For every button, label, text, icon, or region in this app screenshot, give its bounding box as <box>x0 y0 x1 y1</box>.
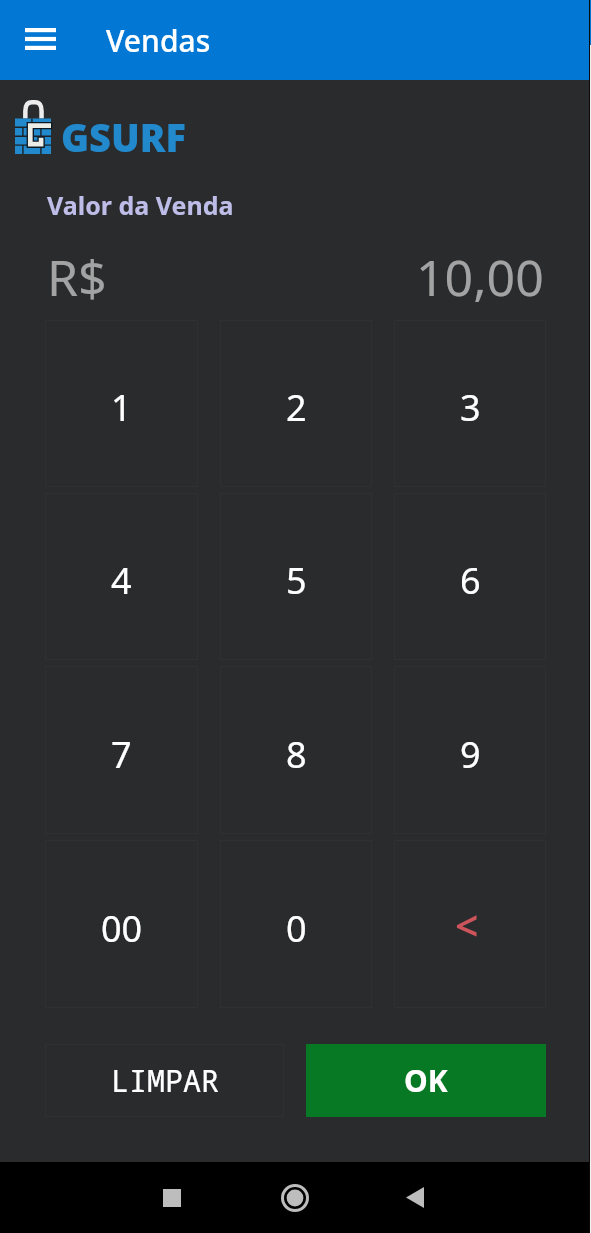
button[interactable]: 5 <box>220 493 372 660</box>
staticText: 2 <box>286 383 307 432</box>
staticText: 3 <box>460 383 481 432</box>
button[interactable]: 1 <box>45 320 198 487</box>
staticText: 8 <box>286 730 307 779</box>
button[interactable]: 8 <box>220 666 372 834</box>
button[interactable]: 00 <box>45 840 198 1008</box>
button[interactable]: 7 <box>45 666 198 834</box>
button[interactable]: 4 <box>45 493 198 660</box>
staticText: 4 <box>111 556 132 605</box>
button[interactable]: 6 <box>394 493 546 660</box>
button[interactable]: Open navigation menu <box>12 12 68 68</box>
button[interactable]: Home <box>255 1162 335 1233</box>
button[interactable]: 3 <box>394 320 546 487</box>
button[interactable]: Recent apps <box>132 1162 212 1233</box>
button[interactable]: Back <box>375 1162 455 1233</box>
staticText: Vendas <box>106 20 211 61</box>
staticText: 5 <box>286 556 307 605</box>
button[interactable]: OK <box>306 1044 546 1117</box>
staticText: 00 <box>101 904 143 953</box>
staticText: 9 <box>460 730 481 779</box>
staticText: 1 <box>111 383 132 432</box>
staticText: 10,00 <box>416 243 544 309</box>
staticText: Valor da Venda <box>47 188 234 222</box>
button[interactable]: 9 <box>394 666 546 834</box>
staticText: OK <box>404 1060 448 1101</box>
button[interactable]: 2 <box>220 320 372 487</box>
staticText: 6 <box>460 556 481 605</box>
staticText: GSURF <box>61 111 187 163</box>
staticText: LIMPAR <box>111 1060 219 1101</box>
staticText: < <box>455 897 479 953</box>
button[interactable]: 0 <box>220 840 372 1008</box>
button[interactable]: < <box>394 840 546 1008</box>
button[interactable]: LIMPAR <box>45 1044 284 1117</box>
staticText: R$ <box>47 243 107 309</box>
staticText: 7 <box>111 730 132 779</box>
staticText: 0 <box>286 904 307 953</box>
